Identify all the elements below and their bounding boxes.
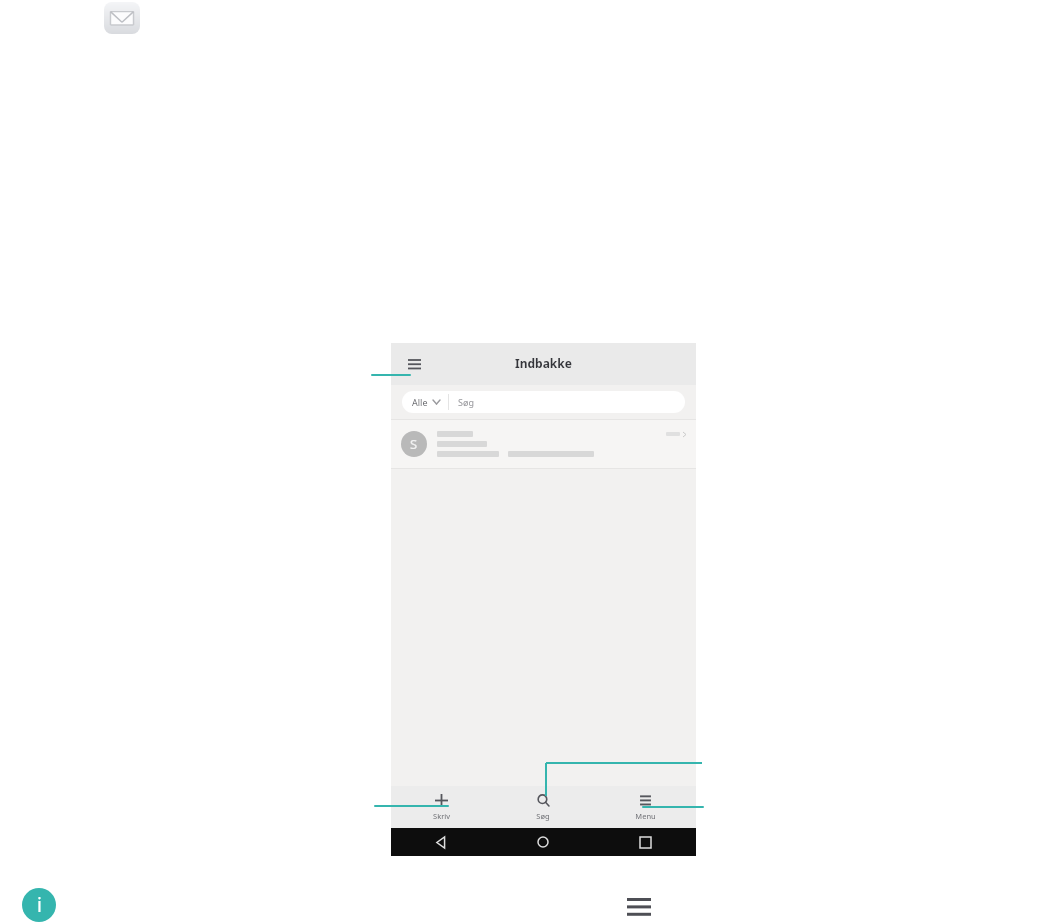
staticText: S xyxy=(410,435,418,453)
staticText: Søg xyxy=(536,811,550,821)
staticText: Indbakke xyxy=(515,355,572,371)
staticText: i xyxy=(37,892,42,918)
button[interactable]: Home xyxy=(492,828,594,856)
button[interactable]: Menu xyxy=(594,786,696,828)
button[interactable]: Information xyxy=(22,888,56,922)
button[interactable]: Mail app icon xyxy=(104,2,140,34)
button[interactable]: Alle xyxy=(412,396,440,408)
staticText: Søg xyxy=(458,396,474,408)
button[interactable]: Menu xyxy=(622,892,656,920)
button[interactable]: Back xyxy=(391,828,492,856)
button[interactable]: S xyxy=(391,419,696,469)
button[interactable]: Skriv xyxy=(391,786,492,828)
staticText: Skriv xyxy=(433,811,450,821)
staticText: Alle xyxy=(412,396,428,408)
button[interactable]: Recents xyxy=(594,828,696,856)
button[interactable]: Alle xyxy=(402,391,685,413)
staticText: Menu xyxy=(635,811,656,821)
button[interactable]: Menu xyxy=(401,351,427,377)
button[interactable]: Søg xyxy=(492,786,594,828)
